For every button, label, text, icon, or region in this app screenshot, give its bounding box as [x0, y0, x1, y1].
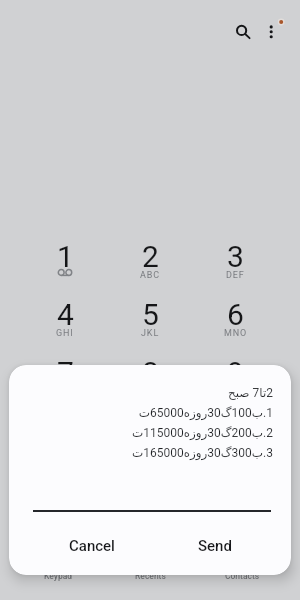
staticText: WXYZ	[221, 386, 250, 397]
button[interactable]: Send	[153, 530, 277, 562]
staticText: Send	[198, 537, 232, 555]
staticText: 3	[227, 239, 244, 274]
button[interactable]: 6	[193, 297, 278, 355]
staticText: 4	[57, 297, 74, 332]
staticText: MNO	[224, 328, 248, 339]
button[interactable]: 0	[108, 413, 193, 471]
staticText: DEF	[226, 270, 245, 281]
staticText: 0	[142, 413, 159, 448]
button[interactable]: 8	[108, 355, 193, 413]
button[interactable]: Recents	[104, 566, 196, 600]
staticText: 6	[227, 297, 244, 332]
staticText: 9	[227, 355, 244, 390]
button[interactable]: Keypad	[12, 566, 104, 600]
staticText: Recents	[135, 571, 166, 581]
staticText: Cancel	[69, 537, 115, 555]
staticText: JKL	[141, 328, 160, 339]
button[interactable]: 2	[108, 239, 193, 297]
button[interactable]: #	[193, 413, 278, 471]
staticText: 7	[57, 355, 74, 390]
button[interactable]: Cancel	[30, 530, 153, 562]
button[interactable]: 4	[22, 297, 108, 355]
staticText: ABC	[140, 270, 161, 281]
button[interactable]: Search	[231, 19, 254, 42]
button[interactable]: 9	[193, 355, 278, 413]
button[interactable]: More options	[262, 15, 288, 41]
button[interactable]: 1	[22, 239, 108, 297]
staticText: 2	[142, 239, 159, 274]
staticText: 5	[142, 297, 159, 332]
staticText: +	[147, 444, 154, 455]
staticText: 8	[142, 355, 159, 390]
button[interactable]: 7	[22, 355, 108, 413]
button[interactable]: Contacts	[196, 566, 288, 600]
button[interactable]: 5	[108, 297, 193, 355]
button[interactable]: 3	[193, 239, 278, 297]
staticText: Keypad	[44, 571, 73, 581]
staticText: GHI	[56, 328, 74, 339]
staticText: Contacts	[225, 571, 260, 581]
staticText: #	[226, 413, 245, 448]
staticText: 2تا7 صبح 1.ب100گ30روزه65000ت 2.ب200گ30رو…	[131, 386, 273, 460]
staticText: 1	[57, 239, 74, 274]
